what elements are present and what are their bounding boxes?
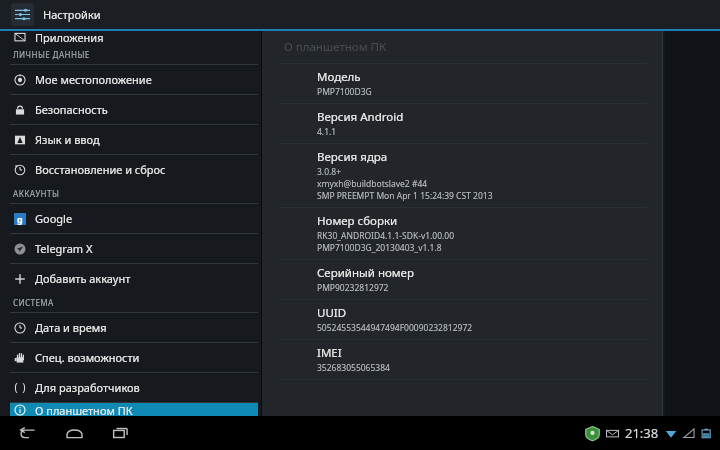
- button[interactable]: О планшетном ПК: [10, 403, 258, 416]
- staticText: Спец. возможности: [35, 350, 140, 365]
- staticText: АККАУНТЫ: [13, 188, 60, 199]
- staticText: Серийный номер: [317, 265, 414, 281]
- staticText: О планшетном ПК: [35, 403, 133, 416]
- staticText: Версия Android: [317, 109, 404, 125]
- staticText: Настройки: [43, 7, 101, 22]
- staticText: Восстановление и сброс: [35, 162, 166, 177]
- staticText: ЛИЧНЫЕ ДАННЫЕ: [13, 49, 90, 60]
- button[interactable]: Мое местоположение: [0, 65, 262, 94]
- button[interactable]: Спец. возможности: [0, 343, 262, 372]
- staticText: xmyxh@buildbotslave2 #44: [317, 178, 428, 190]
- button[interactable]: Settings: [11, 3, 34, 26]
- button[interactable]: Версия Android: [262, 104, 665, 143]
- button[interactable]: Восстановление и сброс: [0, 155, 262, 184]
- button[interactable]: Серийный номер: [262, 260, 665, 299]
- staticText: PMP7100D3G: [317, 86, 372, 98]
- staticText: 4.1.1: [317, 126, 337, 138]
- button[interactable]: Безопасность: [0, 95, 262, 124]
- staticText: О планшетном ПК: [284, 39, 387, 55]
- button[interactable]: UUID: [262, 300, 665, 339]
- button[interactable]: Номер сборки: [262, 208, 665, 259]
- staticText: 3.0.8+: [317, 166, 342, 178]
- staticText: g: [17, 213, 23, 225]
- staticText: Google: [35, 211, 73, 226]
- button[interactable]: Приложения: [0, 31, 262, 45]
- staticText: Модель: [317, 69, 361, 85]
- button[interactable]: g: [0, 204, 262, 233]
- staticText: SMP PREEMPT Mon Apr 1 15:24:39 CST 2013: [317, 190, 493, 202]
- staticText: Дата и время: [35, 320, 107, 335]
- staticText: Безопасность: [35, 102, 108, 117]
- button[interactable]: Добавить аккаунт: [0, 264, 262, 293]
- staticText: Мое местоположение: [35, 72, 152, 87]
- staticText: RK30_ANDROID4.1.1-SDK-v1.00.00: [317, 230, 455, 242]
- button[interactable]: Status bar: [585, 424, 712, 442]
- staticText: Telegram X: [35, 241, 93, 256]
- staticText: 21:38: [625, 424, 659, 442]
- staticText: Для разработчиков: [35, 380, 140, 395]
- staticText: Язык и ввод: [35, 132, 100, 147]
- button[interactable]: Для разработчиков: [0, 373, 262, 402]
- button[interactable]: Модель: [262, 64, 665, 103]
- button[interactable]: Язык и ввод: [0, 125, 262, 154]
- staticText: UUID: [317, 305, 347, 321]
- staticText: 352683055065384: [317, 362, 390, 374]
- button[interactable]: Recent apps: [108, 420, 134, 446]
- staticText: Приложения: [35, 30, 104, 44]
- button[interactable]: Дата и время: [0, 313, 262, 342]
- staticText: PMP90232812972: [317, 282, 389, 294]
- staticText: IMEI: [317, 345, 342, 361]
- staticText: Номер сборки: [317, 213, 398, 229]
- staticText: Добавить аккаунт: [35, 271, 131, 286]
- staticText: 50524553544947494F00090232812972: [317, 322, 473, 334]
- button[interactable]: Telegram X: [0, 234, 262, 263]
- button[interactable]: Версия ядра: [262, 144, 665, 207]
- staticText: Версия ядра: [317, 149, 388, 165]
- staticText: СИСТЕМА: [13, 297, 54, 308]
- button[interactable]: Back: [14, 420, 40, 446]
- button[interactable]: IMEI: [262, 340, 665, 379]
- button[interactable]: Home: [61, 420, 87, 446]
- staticText: PMP7100D3G_20130403_v1.1.8: [317, 242, 442, 254]
